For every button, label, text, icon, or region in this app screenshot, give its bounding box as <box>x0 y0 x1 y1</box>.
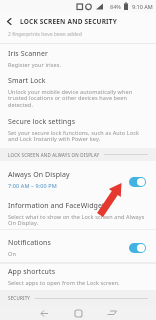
button[interactable] <box>61 306 95 320</box>
staticText: Iris Scanner <box>8 49 49 59</box>
button[interactable]: Iris Scanner <box>0 44 156 72</box>
staticText: Set your secure lock functions, such as … <box>8 129 139 143</box>
staticText: Notifications <box>8 238 51 248</box>
staticText: Information and FaceWidgets <box>8 201 109 211</box>
staticText: SECURITY <box>8 295 31 301</box>
button[interactable]: Always On Display <box>0 169 156 194</box>
staticText: Select what to show on the Lock screen a… <box>8 213 145 227</box>
button[interactable] <box>27 306 61 320</box>
staticText: Always On Display <box>8 170 70 180</box>
staticText: 9:10 AM <box>132 3 153 10</box>
staticText: On <box>8 250 16 257</box>
button[interactable]: App shortcuts <box>0 264 156 290</box>
staticText: Unlock your mobile device automatically … <box>8 88 133 109</box>
staticText: 84% <box>110 3 121 10</box>
staticText: App shortcuts <box>8 267 56 277</box>
button[interactable] <box>129 177 146 187</box>
button[interactable]: LOCK SCREEN AND SECURITY <box>0 13 156 30</box>
staticText: Secure lock settings <box>8 117 76 127</box>
staticText: LOCK SCREEN AND ALWAYS ON DISPLAY <box>8 152 100 158</box>
button[interactable] <box>95 306 129 320</box>
staticText: 7:00 AM – 9:00 PM <box>8 182 57 189</box>
staticText: Smart Lock <box>8 76 46 86</box>
button[interactable]: Information and FaceWidgets <box>0 194 156 229</box>
staticText: Register your irises. <box>8 61 62 68</box>
button[interactable]: Notifications <box>0 230 156 262</box>
staticText: Select apps to open from the Lock screen… <box>8 279 120 286</box>
staticText: 2 fingerprints have been added <box>8 31 82 38</box>
button[interactable] <box>129 243 146 253</box>
staticText: LOCK SCREEN AND SECURITY <box>20 17 118 26</box>
button[interactable]: Secure lock settings <box>0 113 156 148</box>
button[interactable]: Smart Lock <box>0 72 156 113</box>
